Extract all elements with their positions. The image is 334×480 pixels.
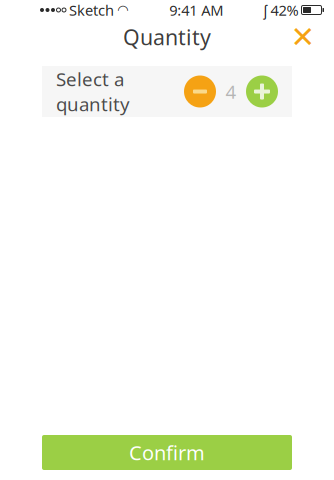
staticText: ʃ: [263, 0, 267, 20]
staticText: ✕: [290, 20, 315, 54]
staticText: 4: [225, 79, 236, 104]
staticText: 42%: [270, 0, 298, 20]
button[interactable]: Close: [281, 20, 325, 54]
staticText: Quantity: [123, 23, 211, 51]
button[interactable]: Increase quantity: [246, 75, 278, 107]
staticText: ◠: [117, 2, 129, 17]
staticText: 9:41 AM: [169, 0, 223, 20]
button[interactable]: Decrease quantity: [184, 75, 216, 107]
staticText: Sketch: [69, 0, 114, 20]
staticText: Select a quantity: [56, 67, 130, 116]
button[interactable]: Confirm: [42, 435, 292, 470]
staticText: Confirm: [129, 439, 205, 466]
